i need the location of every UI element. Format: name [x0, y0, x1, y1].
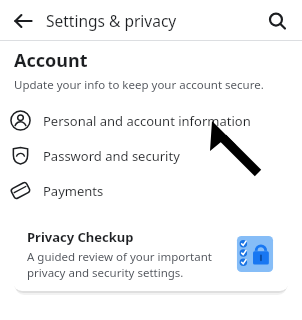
staticText: Settings & privacy [46, 10, 177, 31]
button[interactable]: Back [6, 4, 40, 38]
button[interactable]: Privacy Checkup [13, 216, 289, 291]
staticText: Account [14, 48, 88, 73]
button[interactable]: Password and security [0, 138, 302, 173]
button[interactable]: Payments [0, 173, 302, 208]
button[interactable]: Personal and account information [0, 103, 302, 138]
staticText: Personal and account information [43, 112, 251, 130]
staticText: Password and security [43, 147, 180, 165]
staticText: Update your info to keep your account se… [14, 77, 264, 93]
staticText: Payments [43, 182, 104, 200]
button[interactable]: Search [260, 4, 294, 38]
staticText: Privacy Checkup [27, 228, 134, 246]
staticText: A guided review of your important privac… [27, 249, 212, 280]
